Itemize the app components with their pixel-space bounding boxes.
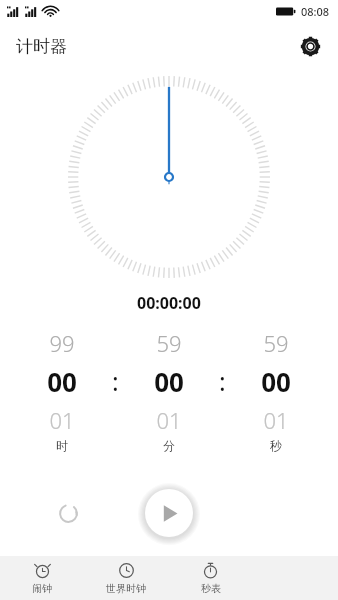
button[interactable]: 秒表 [168,556,253,600]
button[interactable]: 99 [20,328,104,452]
staticText: 59 [156,328,182,358]
staticText: 分 [163,438,175,452]
button[interactable]: 59 [233,328,318,452]
staticText: 01 [263,405,289,435]
staticText: 08:08 [301,4,330,19]
staticText: 99 [49,328,75,358]
staticText: 59 [263,328,289,358]
button[interactable]: Reset [48,493,88,533]
staticText: 01 [49,405,75,435]
staticText: 时 [56,438,68,452]
button[interactable]: 闹钟 [0,556,84,600]
button[interactable]: Settings [290,26,330,66]
staticText: : [112,364,119,398]
staticText: 计时器 [16,36,67,57]
staticText: 秒表 [201,582,221,595]
button[interactable]: 世界时钟 [84,556,168,600]
staticText: 世界时钟 [106,582,146,595]
staticText: 01 [156,405,182,435]
staticText: 00 [47,364,77,399]
staticText: 闹钟 [32,582,52,595]
staticText: 00 [154,364,184,399]
button[interactable]: Start [145,489,193,537]
staticText: 00 [261,364,291,399]
staticText: 秒 [270,438,282,452]
staticText: : [219,364,226,398]
button[interactable]: 59 [126,328,211,452]
staticText: 00:00:00 [137,292,201,314]
